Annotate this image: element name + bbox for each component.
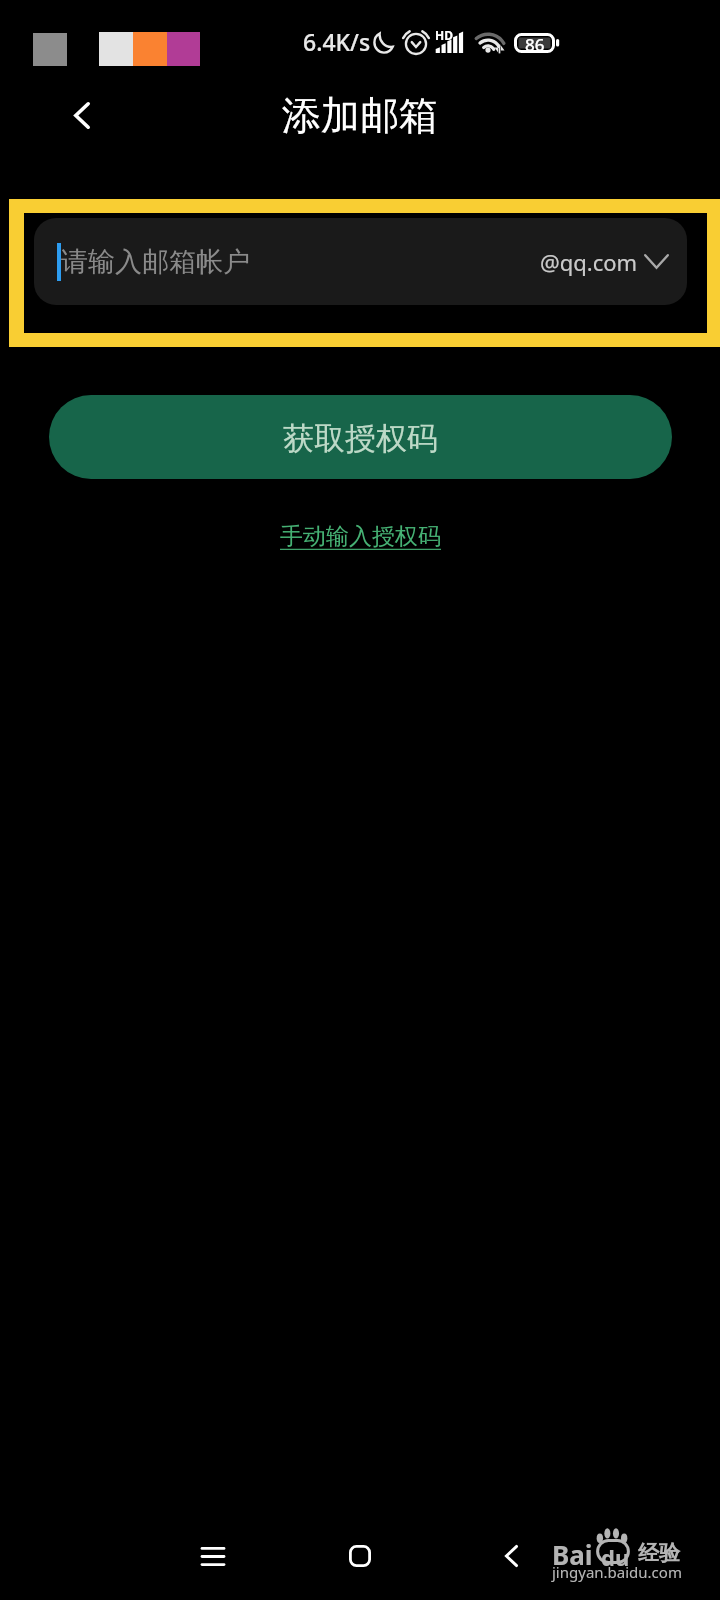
staticText: 86: [525, 33, 545, 53]
button[interactable]: Home: [336, 1532, 384, 1580]
button[interactable]: 手动输入授权码: [274, 518, 447, 555]
staticText: 6.4K/s: [303, 26, 371, 57]
staticText: 添加邮箱: [282, 91, 438, 140]
button[interactable]: Back: [487, 1532, 535, 1580]
staticText: Bai: [552, 1537, 593, 1572]
button[interactable]: Back: [55, 88, 109, 142]
button[interactable]: 请输入邮箱帐户: [34, 218, 540, 305]
staticText: du: [601, 1542, 630, 1572]
button[interactable]: @qq.com: [540, 218, 687, 305]
staticText: 手动输入授权码: [280, 522, 441, 551]
button[interactable]: 获取授权码: [49, 395, 672, 479]
button[interactable]: Recents: [189, 1532, 237, 1580]
staticText: HD: [435, 27, 453, 43]
staticText: 获取授权码: [283, 419, 438, 458]
staticText: @qq.com: [540, 247, 638, 277]
staticText: 请输入邮箱帐户: [61, 245, 250, 279]
staticText: 经验: [638, 1540, 680, 1566]
staticText: jingyan.baidu.com: [552, 1562, 682, 1582]
